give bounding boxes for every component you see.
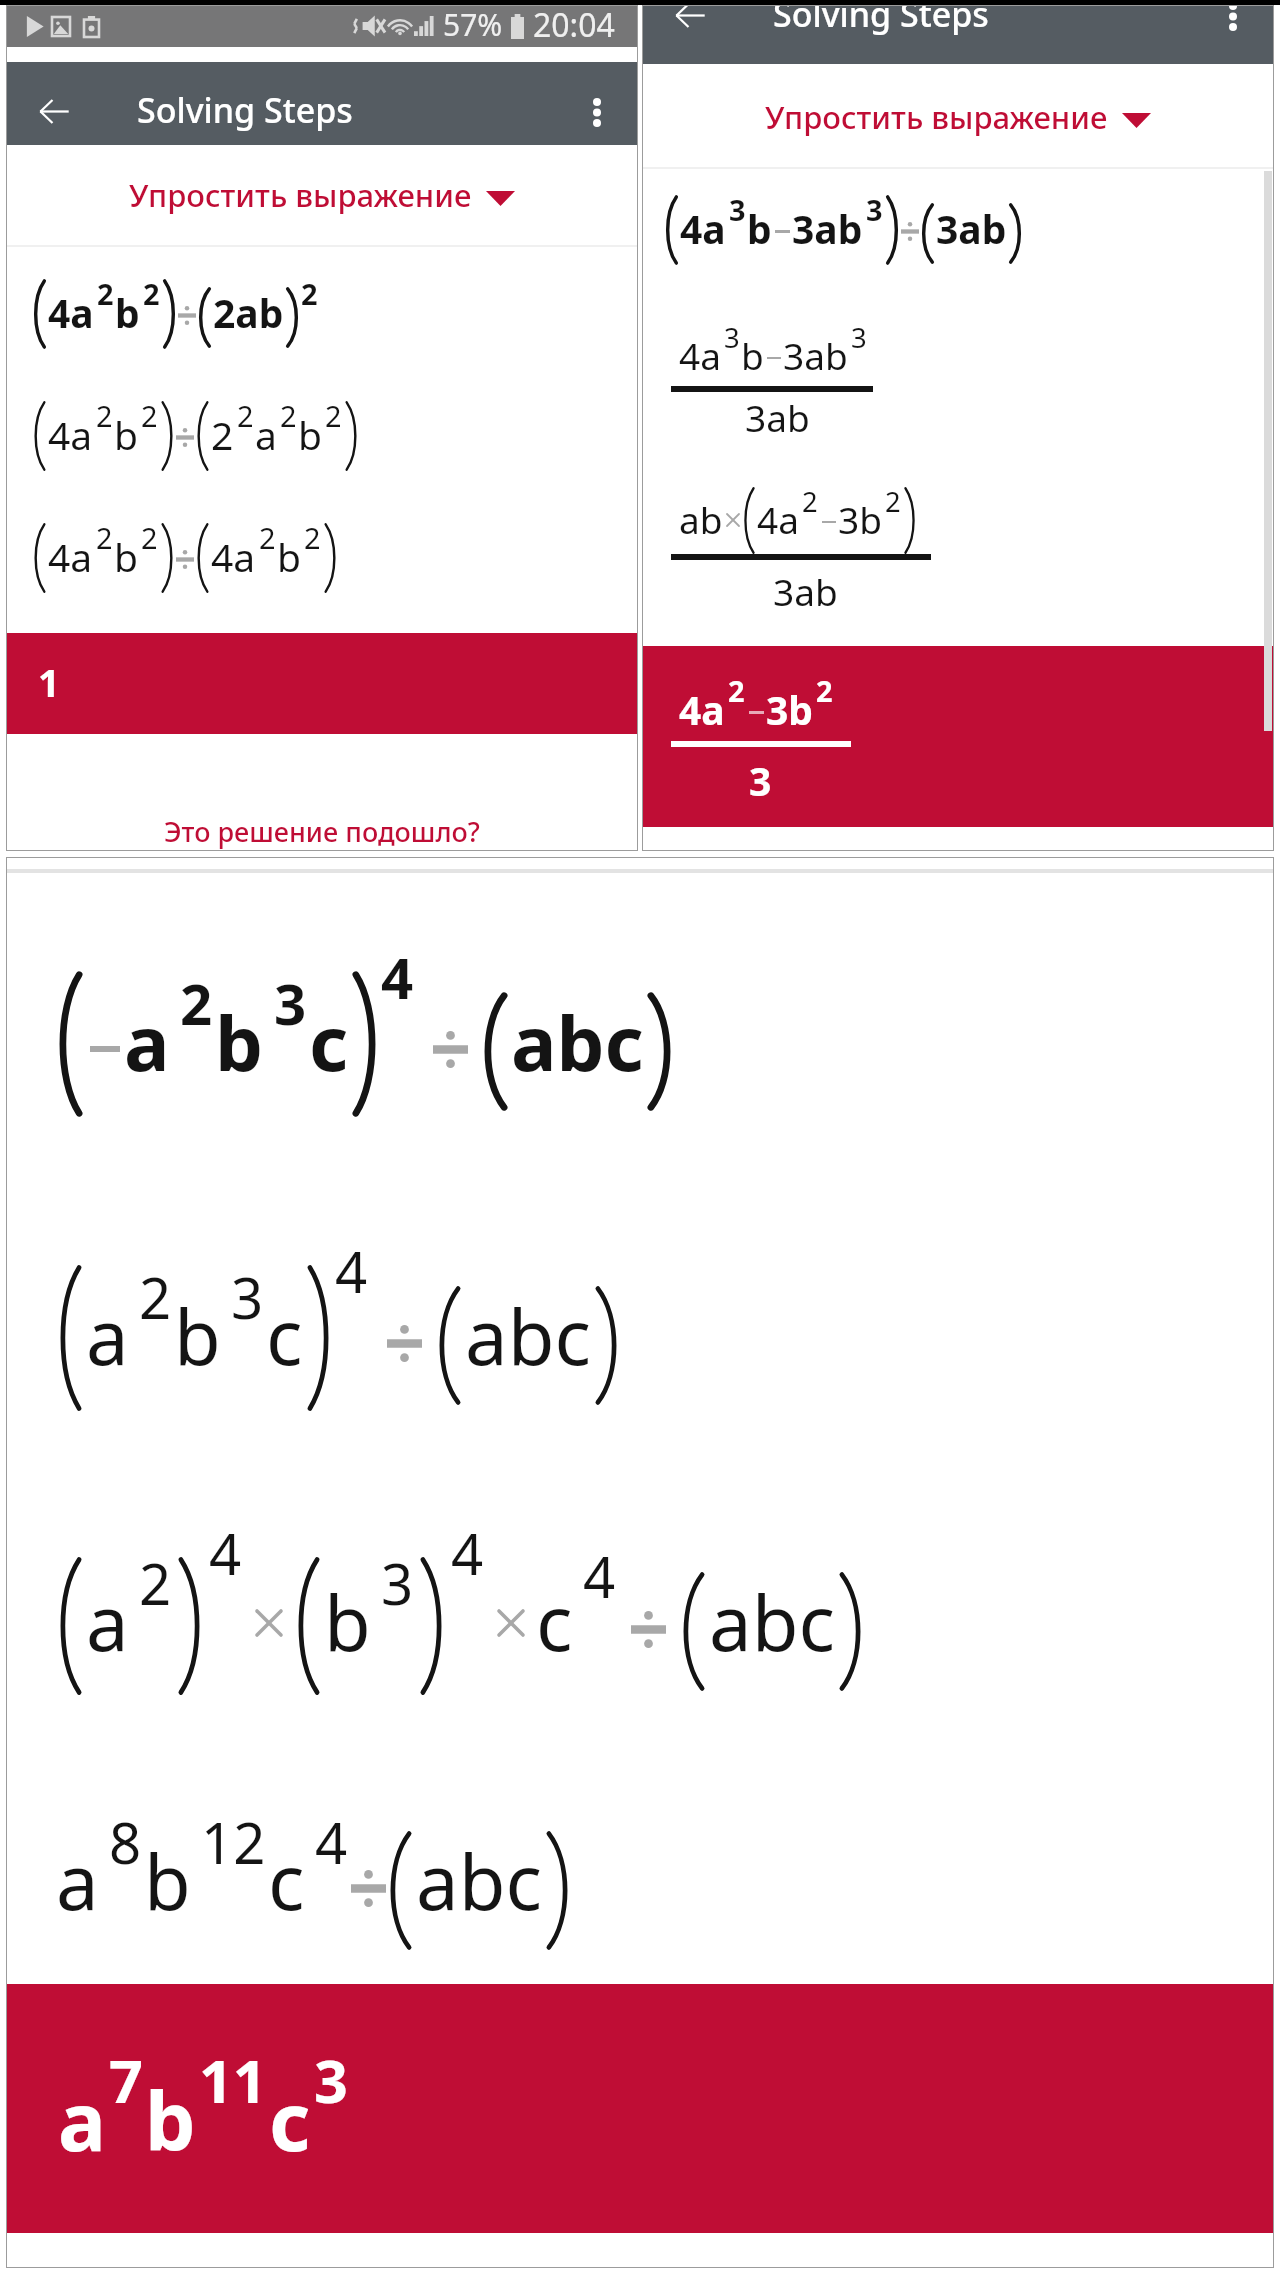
staticText: 2ab [213, 286, 284, 339]
staticText: 3 [231, 1259, 264, 1336]
staticText: 4a [211, 530, 256, 583]
staticText: 2 [816, 671, 833, 710]
staticText: a [255, 408, 277, 461]
staticText: 2 [301, 274, 318, 313]
staticText: 3ab [783, 330, 848, 380]
staticText: abc [709, 1570, 835, 1674]
staticText: 4a [757, 494, 799, 544]
staticText: 2 [139, 1545, 172, 1622]
staticText: 3ab [773, 566, 838, 616]
staticText: 11 [199, 2040, 267, 2121]
button[interactable]: Упростить выражение [6, 145, 638, 245]
staticText: abc [416, 1829, 542, 1933]
staticText: c [309, 990, 349, 1094]
staticText: 3 [724, 319, 740, 356]
staticText: 3 [381, 1545, 414, 1622]
staticText: a [86, 1570, 129, 1674]
staticText: 8 [109, 1804, 142, 1881]
staticText: b [174, 1284, 221, 1388]
staticText: 3 [851, 319, 867, 356]
staticText: b [115, 286, 140, 339]
staticText: 2 [96, 396, 113, 435]
staticText: 2 [259, 518, 276, 557]
button[interactable]: More options [1208, 5, 1258, 42]
staticText: 2 [141, 396, 158, 435]
button[interactable]: Это решение подошло? [164, 813, 480, 851]
staticText: 1 [38, 656, 60, 708]
staticText: b [324, 1570, 371, 1674]
staticText: 4 [335, 1233, 368, 1310]
staticText: 2 [139, 1259, 172, 1336]
staticText: Solving Steps [773, 5, 989, 37]
staticText: b [114, 408, 138, 461]
staticText: Это решение подошло? [164, 813, 480, 850]
staticText: 2 [802, 483, 818, 520]
button[interactable]: a [6, 1984, 1274, 2233]
staticText: c [266, 1284, 303, 1388]
button[interactable]: Back [24, 85, 84, 137]
staticText: 4 [209, 1515, 242, 1592]
staticText: a [124, 990, 170, 1094]
staticText: 3b [766, 683, 813, 736]
staticText: 2 [211, 408, 234, 461]
staticText: 2 [180, 965, 213, 1042]
staticText: 20:04 [533, 3, 615, 45]
staticText: 4a [48, 530, 93, 583]
staticText: a [58, 2065, 106, 2174]
staticText: abc [465, 1284, 591, 1388]
staticText: b [741, 330, 764, 380]
staticText: 4a [679, 330, 721, 380]
staticText: 3b [838, 494, 882, 544]
button[interactable]: More options [572, 86, 622, 138]
staticText: 2 [96, 518, 113, 557]
staticText: b [215, 990, 264, 1094]
staticText: 4a [48, 408, 93, 461]
staticText: 2 [237, 396, 254, 435]
staticText: 2 [728, 671, 745, 710]
staticText: 4 [381, 939, 414, 1016]
staticText: a [86, 1284, 129, 1388]
button[interactable]: 1 [6, 633, 638, 734]
staticText: 3 [314, 2040, 348, 2121]
staticText: 2 [885, 483, 901, 520]
staticText: 2 [325, 396, 342, 435]
staticText: 2 [280, 396, 297, 435]
staticText: 2 [97, 274, 114, 313]
staticText: 3ab [936, 202, 1007, 255]
staticText: 4a [680, 202, 726, 255]
staticText: b [145, 2065, 196, 2174]
staticText: abc [511, 990, 644, 1094]
staticText: b [144, 1829, 191, 1933]
staticText: 3 [749, 754, 772, 807]
button[interactable]: Упростить выражение [642, 67, 1274, 167]
staticText: 7 [109, 2040, 143, 2121]
staticText: 3 [729, 190, 746, 229]
staticText: Упростить выражение [765, 96, 1108, 138]
staticText: c [269, 2065, 311, 2174]
staticText: 3 [274, 965, 307, 1042]
staticText: b [277, 530, 301, 583]
staticText: 4a [679, 683, 725, 736]
button[interactable]: Back [660, 5, 720, 41]
staticText: 2 [304, 518, 321, 557]
staticText: Упростить выражение [129, 174, 472, 216]
staticText: 4a [48, 286, 94, 339]
staticText: 4 [451, 1515, 484, 1592]
staticText: ab [679, 494, 723, 544]
staticText: c [268, 1829, 305, 1933]
staticText: 4 [583, 1538, 616, 1615]
staticText: Solving Steps [137, 87, 353, 133]
staticText: 3ab [792, 202, 863, 255]
staticText: c [536, 1570, 573, 1674]
staticText: 57% [443, 4, 503, 45]
staticText: 12 [201, 1804, 266, 1881]
staticText: b [114, 530, 138, 583]
staticText: 3ab [745, 392, 810, 442]
staticText: b [747, 202, 772, 255]
staticText: 2 [143, 274, 160, 313]
staticText: 4 [315, 1804, 348, 1881]
button[interactable]: 4a [642, 646, 1274, 827]
staticText: b [298, 408, 322, 461]
staticText: 2 [141, 518, 158, 557]
staticText: a [56, 1829, 99, 1933]
